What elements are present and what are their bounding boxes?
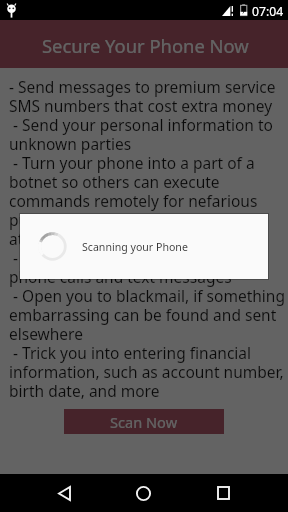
- button[interactable]: Home: [119, 474, 168, 512]
- staticText: Secure Your Phone Now: [42, 33, 249, 58]
- button[interactable]: Back: [40, 474, 89, 512]
- button[interactable]: Recent apps: [199, 474, 248, 512]
- staticText: 07:04: [252, 3, 284, 20]
- button[interactable]: Scan Now: [64, 409, 224, 434]
- staticText: Scan Now: [110, 412, 178, 432]
- staticText: Scanning your Phone: [82, 240, 188, 254]
- staticText: - Send messages to premium service SMS n…: [9, 76, 285, 401]
